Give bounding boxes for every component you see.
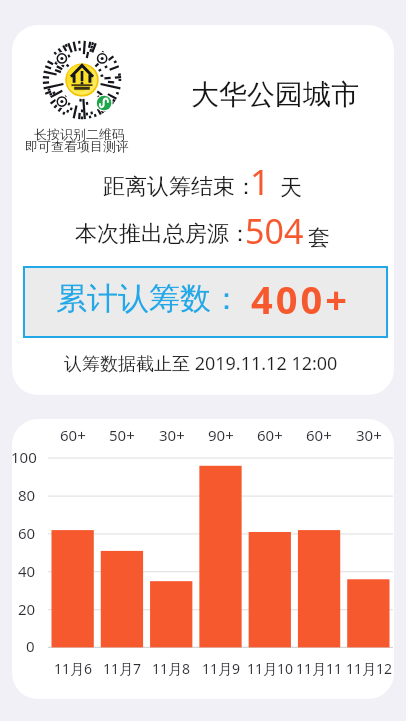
staticText: 即可查看项目测评 <box>25 138 129 154</box>
staticText: 60+ <box>306 425 332 445</box>
button[interactable]: 小程序二维码 <box>12 25 394 395</box>
staticText: 30+ <box>159 425 185 445</box>
staticText: 天 <box>280 174 302 202</box>
staticText: 11月12 <box>346 659 393 678</box>
staticText: 30+ <box>356 425 382 445</box>
staticText: 大华公园城市 <box>191 77 359 112</box>
staticText: 80 <box>18 485 36 505</box>
staticText: 累计认筹数： <box>56 279 242 318</box>
staticText: 60+ <box>257 425 283 445</box>
staticText: 90+ <box>208 425 234 445</box>
staticText: 11月10 <box>247 659 294 678</box>
other: 小程序二维码 <box>38 36 126 124</box>
staticText: 20 <box>18 599 36 619</box>
button[interactable] <box>23 266 388 338</box>
staticText: 50+ <box>109 425 135 445</box>
staticText: 距离认筹结束： <box>103 173 257 201</box>
staticText: 长按识别二维码 <box>34 126 125 142</box>
staticText: 60 <box>18 523 36 543</box>
staticText: 11月7 <box>103 659 142 678</box>
staticText: 100 <box>12 447 37 467</box>
staticText: 1 <box>250 158 271 206</box>
staticText: 11月9 <box>202 659 241 678</box>
button[interactable]: 60+ <box>12 419 394 699</box>
staticText: 11月8 <box>152 659 191 678</box>
staticText: 60+ <box>60 425 86 445</box>
staticText: 11月11 <box>296 659 343 678</box>
staticText: 400+ <box>251 273 350 325</box>
staticText: 504 <box>245 208 304 254</box>
staticText: 0 <box>26 636 35 656</box>
staticText: 套 <box>308 224 330 252</box>
staticText: 认筹数据截止至 2019.11.12 12:00 <box>64 351 338 376</box>
staticText: 本次推出总房源： <box>75 220 251 248</box>
staticText: 11月6 <box>54 659 93 678</box>
staticText: 40 <box>18 561 36 581</box>
